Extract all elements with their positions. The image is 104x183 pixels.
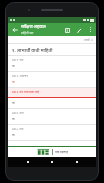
button[interactable]: क (8, 98, 96, 108)
staticText: क (12, 100, 15, 105)
button[interactable]: List view (61, 24, 73, 36)
staticText: मराठी (84, 38, 90, 42)
staticText: माहिती भरा (21, 31, 34, 35)
staticText: क (12, 63, 15, 68)
button[interactable]: Home (47, 157, 57, 167)
button[interactable]: प्रश्न ३. वय आवश्यक आहे (8, 88, 96, 97)
staticText: १. लाभार्थी याची माहिती (12, 47, 53, 53)
button[interactable]: Back (8, 23, 21, 36)
staticText: क (12, 116, 15, 121)
staticText: प्रश्न ४. पत्ता (12, 111, 24, 115)
button[interactable]: प्रश्न २. आडनाव (8, 72, 96, 87)
staticText: क (12, 132, 15, 137)
button[interactable]: प्रश्न ४. पत्ता (8, 109, 96, 124)
button[interactable]: Recents (72, 157, 82, 167)
button[interactable]: प्रश्न १. नाव (8, 56, 96, 71)
staticText: सर्वेक्षण अहवाल (21, 24, 46, 30)
button[interactable]: More options (85, 24, 96, 35)
staticText: एक महाराष्ट्र (55, 150, 68, 154)
staticText: प्रश्न १. नाव (12, 58, 24, 62)
staticText: प्रश्न ५. गाव (12, 127, 24, 131)
button[interactable]: एक महाराष्ट्र (8, 147, 96, 157)
staticText: क (12, 79, 15, 84)
button[interactable]: Back (23, 157, 33, 167)
button[interactable]: मराठी (8, 36, 93, 43)
staticText: प्रश्न ३. वय आवश्यक आहे (12, 90, 40, 94)
button[interactable]: Edit (73, 24, 85, 36)
button[interactable]: सर्वेक्षण अहवाल (21, 24, 61, 35)
button[interactable]: प्रश्न ५. गाव (8, 125, 96, 140)
staticText: प्रश्न २. आडनाव (12, 74, 28, 78)
